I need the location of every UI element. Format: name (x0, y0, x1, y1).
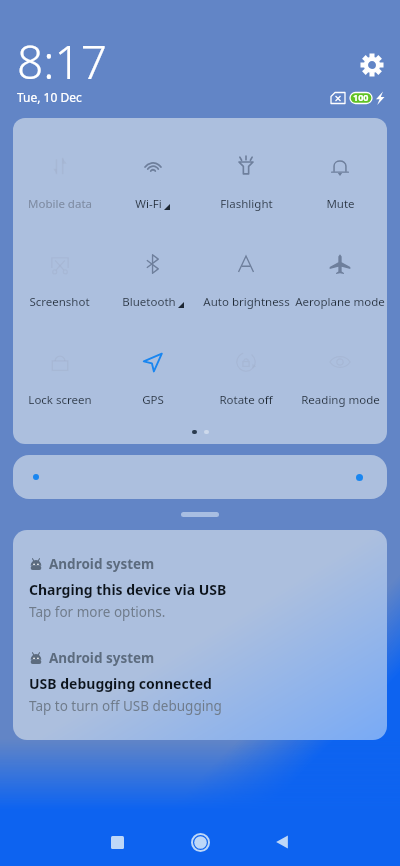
button[interactable]: Android system (13, 649, 387, 715)
button[interactable]: Auto brightness (199, 234, 293, 332)
staticText: GPS (142, 392, 164, 408)
staticText: 100 (353, 91, 369, 103)
button[interactable]: Android system (13, 555, 387, 621)
button[interactable]: Mute (293, 136, 387, 234)
button[interactable]: Settings (358, 51, 386, 79)
staticText: Bluetooth (122, 294, 176, 310)
button[interactable]: Home (176, 818, 224, 866)
staticText: Tap for more options. (29, 603, 166, 621)
button[interactable]: Mobile data (13, 136, 106, 234)
button[interactable]: Aeroplane mode (293, 234, 387, 332)
staticText: Screenshot (29, 294, 90, 310)
staticText: Reading mode (301, 392, 380, 408)
staticText: Mobile data (28, 196, 92, 212)
button[interactable]: Back (258, 818, 306, 866)
button[interactable]: Lock screen (13, 332, 106, 430)
button[interactable]: Recents (93, 818, 141, 866)
staticText: Tap to turn off USB debugging (29, 697, 222, 715)
staticText: Android system (49, 649, 155, 667)
staticText: Flashlight (220, 196, 273, 212)
staticText: Wi-Fi (135, 196, 162, 212)
staticText: Mute (326, 196, 355, 212)
button[interactable]: Bluetooth (106, 234, 199, 332)
button[interactable]: Flashlight (199, 136, 293, 234)
button[interactable]: Screenshot (13, 234, 106, 332)
button[interactable]: Reading mode (293, 332, 387, 430)
staticText: Aeroplane mode (295, 294, 385, 310)
staticText: Lock screen (28, 392, 92, 408)
button[interactable]: Rotate off (199, 332, 293, 430)
staticText: Tue, 10 Dec (17, 89, 82, 105)
button[interactable]: Wi-Fi (106, 136, 199, 234)
staticText: Auto brightness (203, 294, 290, 310)
staticText: 8:17 (17, 30, 108, 93)
button[interactable]: Brightness (13, 455, 387, 499)
staticText: Android system (49, 555, 155, 573)
staticText: USB debugging connected (29, 674, 212, 693)
staticText: Charging this device via USB (29, 580, 227, 599)
staticText: Rotate off (219, 392, 273, 408)
button[interactable]: GPS (106, 332, 199, 430)
